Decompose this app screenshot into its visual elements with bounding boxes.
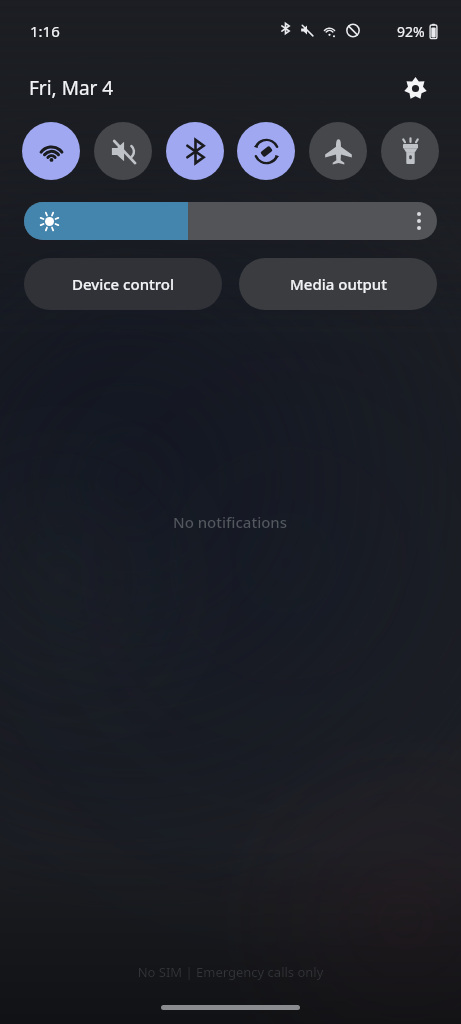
staticText: No SIM | Emergency calls only — [0, 963, 461, 981]
staticText: Fri, Mar 4 — [29, 75, 114, 101]
button[interactable]: Wi-Fi — [22, 122, 80, 180]
button[interactable]: Brightness — [24, 202, 437, 240]
staticText: 1:16 — [30, 21, 60, 41]
button[interactable]: Settings — [395, 68, 435, 108]
button[interactable]: Airplane mode — [309, 122, 367, 180]
button[interactable]: Bluetooth — [166, 122, 224, 180]
button[interactable]: Flashlight — [381, 122, 439, 180]
button[interactable]: Auto rotate — [237, 122, 295, 180]
button[interactable]: Sound off — [94, 122, 152, 180]
staticText: Media output — [290, 274, 387, 294]
button[interactable]: Device control — [24, 258, 222, 310]
staticText: No notifications — [173, 512, 288, 532]
staticText: Device control — [72, 274, 175, 294]
staticText: 92% — [397, 22, 425, 41]
button[interactable]: Media output — [239, 258, 437, 310]
